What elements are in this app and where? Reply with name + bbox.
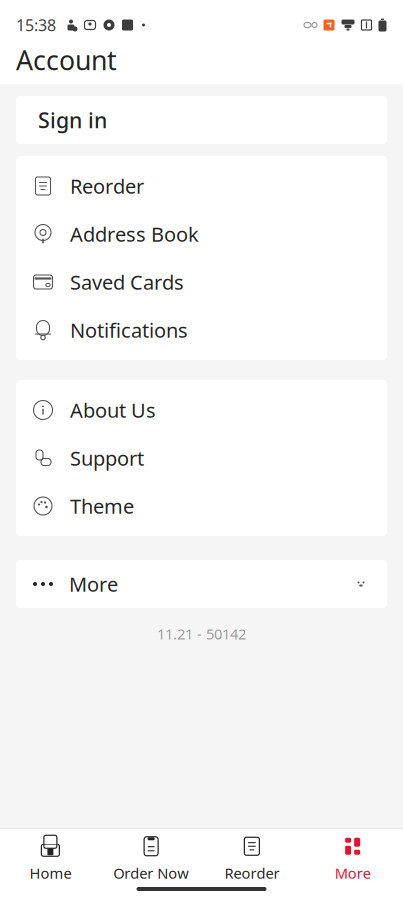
button[interactable]: Reorder	[16, 162, 387, 210]
button[interactable]: Notifications	[16, 306, 387, 354]
staticText: Saved Cards	[70, 269, 184, 295]
button[interactable]: Address Book	[16, 210, 387, 258]
staticText: Order Now	[113, 863, 189, 883]
button[interactable]: Sign in	[16, 96, 387, 144]
staticText: Home	[29, 863, 71, 883]
staticText: About Us	[70, 397, 156, 423]
button[interactable]: Theme	[16, 482, 387, 530]
staticText: Notifications	[70, 317, 188, 343]
button[interactable]: Saved Cards	[16, 258, 387, 306]
button[interactable]: More	[16, 560, 387, 608]
button[interactable]: Reorder	[201, 835, 302, 883]
staticText: More	[335, 863, 371, 883]
staticText: Reorder	[224, 863, 279, 883]
staticText: 11.21 - 50142	[157, 624, 246, 643]
button[interactable]: Order Now	[101, 835, 202, 883]
staticText: Account	[16, 42, 117, 78]
staticText: Address Book	[70, 221, 199, 247]
staticText: Reorder	[70, 173, 144, 199]
button[interactable]: Home	[0, 835, 101, 883]
staticText: More	[69, 571, 118, 597]
staticText: 15:38	[16, 14, 56, 36]
button[interactable]: More	[302, 835, 403, 883]
button[interactable]: Support	[16, 434, 387, 482]
staticText: Theme	[70, 493, 134, 519]
staticText: Support	[70, 445, 144, 471]
button[interactable]: About Us	[16, 386, 387, 434]
staticText: Sign in	[38, 106, 107, 134]
